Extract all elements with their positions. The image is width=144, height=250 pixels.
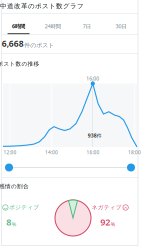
staticText: ネガティブ	[92, 204, 122, 211]
staticText: 18:00	[128, 149, 141, 156]
staticText: 件のポスト	[24, 41, 54, 49]
staticText: 12:00	[3, 149, 16, 156]
staticText: 16:00	[86, 75, 99, 82]
staticText: 感情の割合	[0, 183, 29, 190]
staticText: %	[12, 220, 16, 228]
staticText: 6時間	[12, 22, 25, 30]
staticText: 24時間	[45, 22, 61, 30]
button[interactable]: 6時間	[1, 13, 36, 34]
staticText: 16:00	[86, 149, 99, 156]
staticText: ポジティブ	[9, 204, 39, 211]
staticText: 92	[100, 216, 110, 228]
button[interactable]: 30日	[104, 13, 138, 34]
staticText: ポスト数の推移	[0, 60, 39, 68]
button[interactable]: Range start	[5, 163, 13, 171]
staticText: 938件	[88, 132, 102, 139]
button[interactable]: Range end	[127, 163, 135, 171]
button[interactable]: 7日	[70, 13, 104, 34]
button[interactable]: 24時間	[36, 13, 70, 34]
staticText: %	[111, 220, 115, 228]
staticText: 30日	[115, 22, 126, 30]
staticText: 中道改革のポスト数グラフ	[0, 2, 84, 10]
staticText: 7日	[83, 22, 91, 30]
staticText: 14:00	[45, 149, 58, 156]
staticText: 8	[6, 216, 11, 228]
staticText: 6,668	[2, 38, 24, 49]
